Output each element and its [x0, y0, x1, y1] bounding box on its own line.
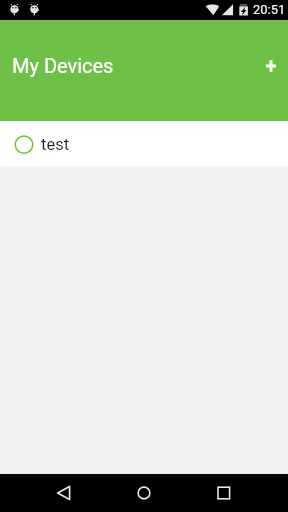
button[interactable]: Home: [113, 474, 175, 512]
button[interactable]: Recent apps: [193, 474, 255, 512]
button[interactable]: Add device: [249, 44, 288, 88]
staticText: test: [41, 135, 70, 154]
staticText: My Devices: [12, 54, 114, 77]
staticText: 20:51: [253, 2, 286, 17]
button[interactable]: Back: [33, 474, 95, 512]
button[interactable]: test: [0, 121, 288, 166]
